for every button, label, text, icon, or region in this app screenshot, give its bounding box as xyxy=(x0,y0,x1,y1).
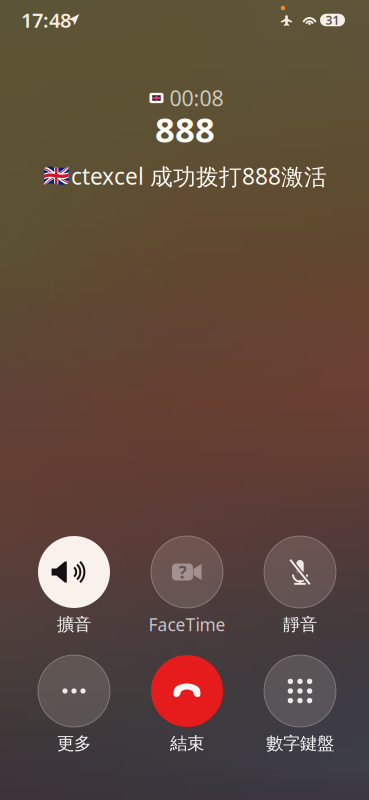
button[interactable]: 結束 xyxy=(135,655,239,752)
staticText: FaceTime xyxy=(148,613,225,636)
staticText: 數字鍵盤 xyxy=(266,733,334,754)
staticText: 結束 xyxy=(170,733,204,754)
staticText: 靜音 xyxy=(283,614,317,635)
button[interactable]: 更多 xyxy=(22,655,126,752)
staticText: 00:08 xyxy=(169,84,223,112)
staticText: 擴音 xyxy=(57,614,91,635)
staticText: ? xyxy=(178,560,186,583)
staticText: ctexcel 成功拨打888激活 xyxy=(71,161,327,191)
staticText: 888 xyxy=(155,106,215,152)
staticText: 31 xyxy=(325,12,339,28)
button[interactable]: 靜音 xyxy=(248,536,352,633)
staticText: 🇬🇧 xyxy=(43,164,70,188)
staticText: 更多 xyxy=(57,733,91,754)
button[interactable]: 擴音 xyxy=(22,536,126,633)
button[interactable]: 數字鍵盤 xyxy=(248,655,352,752)
staticText: 17:48 xyxy=(21,7,71,33)
button[interactable]: ? xyxy=(135,536,239,633)
